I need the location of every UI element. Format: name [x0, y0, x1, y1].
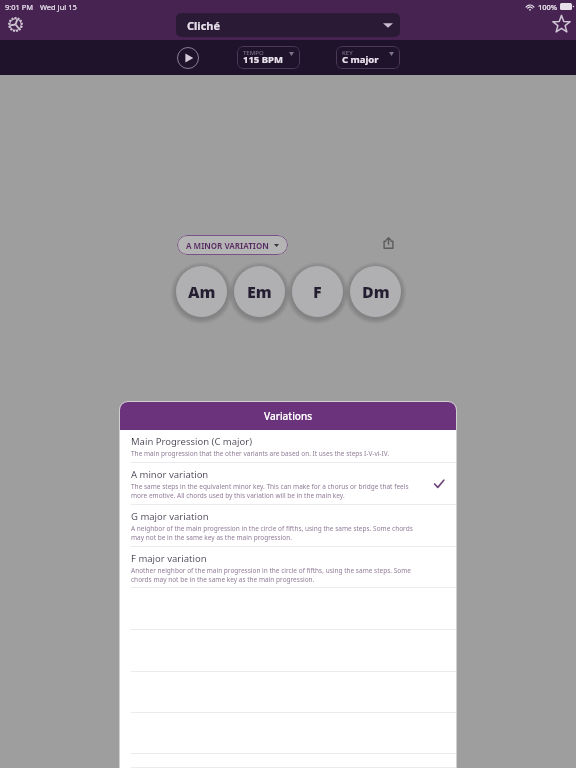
staticText: Em — [247, 281, 272, 303]
button[interactable]: F major variation — [120, 547, 456, 588]
staticText: Wed Jul 15 — [40, 2, 77, 12]
button[interactable]: Cliché — [176, 13, 400, 37]
staticText: The same steps in the equivalent minor k… — [131, 482, 418, 500]
staticText: Another neighbor of the main progression… — [131, 566, 418, 584]
button[interactable]: Dm — [350, 266, 401, 317]
staticText: KEY — [342, 49, 353, 57]
staticText: A MINOR VARIATION — [186, 240, 269, 251]
button[interactable]: G major variation — [120, 505, 456, 547]
button[interactable] — [120, 672, 456, 713]
staticText: A minor variation — [131, 468, 209, 481]
staticText: The main progression that the other vari… — [131, 449, 389, 458]
button[interactable]: Em — [234, 266, 285, 317]
staticText: Variations — [264, 409, 313, 423]
staticText: 9:01 PM — [5, 2, 34, 12]
button[interactable]: Share — [380, 235, 396, 251]
staticText: C major — [342, 53, 379, 66]
button[interactable]: Play — [176, 46, 200, 70]
button[interactable] — [120, 588, 456, 630]
button[interactable] — [120, 754, 456, 768]
button[interactable]: A minor variation — [120, 463, 456, 505]
button[interactable]: A MINOR VARIATION — [177, 235, 288, 255]
button[interactable]: Am — [176, 266, 227, 317]
staticText: 100% — [538, 2, 558, 12]
staticText: F major variation — [131, 552, 207, 565]
staticText: TEMPO — [243, 49, 264, 57]
button[interactable] — [120, 713, 456, 754]
staticText: F — [313, 281, 322, 303]
staticText: Am — [188, 281, 216, 303]
button[interactable] — [120, 630, 456, 672]
staticText: Main Progression (C major) — [131, 435, 253, 448]
button[interactable]: Settings — [6, 15, 25, 34]
staticText: G major variation — [131, 510, 209, 523]
button[interactable]: Favorite — [550, 13, 572, 35]
staticText: Dm — [362, 281, 390, 303]
staticText: A neighbor of the main progression in th… — [131, 524, 418, 542]
staticText: Cliché — [187, 18, 221, 33]
button[interactable]: KEY — [336, 46, 400, 69]
button[interactable]: Main Progression (C major) — [120, 430, 456, 463]
button[interactable]: F — [292, 266, 343, 317]
staticText: 115 BPM — [243, 53, 283, 66]
button[interactable]: TEMPO — [237, 46, 300, 69]
